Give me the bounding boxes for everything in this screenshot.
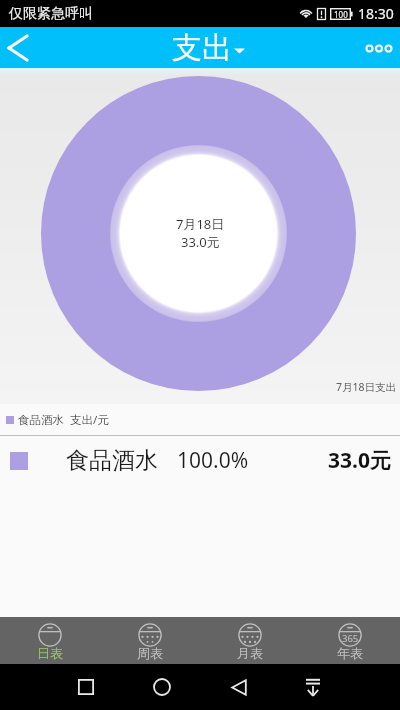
staticText: 周表 — [137, 645, 163, 661]
staticText: 食品酒水 支出/元 — [18, 412, 109, 428]
staticText: 日表 — [37, 645, 63, 661]
staticText: 100.0% — [177, 446, 249, 475]
button[interactable]: Home — [139, 664, 185, 710]
staticText: 33.0元 — [181, 233, 220, 251]
staticText: 7月18日 — [176, 215, 225, 233]
button[interactable]: 365 — [300, 617, 400, 664]
button[interactable]: 周表 — [100, 617, 200, 664]
staticText: 年表 — [337, 645, 363, 661]
button[interactable]: Back — [0, 27, 38, 68]
staticText: 支出 — [172, 29, 232, 67]
staticText: 7月18日支出 — [336, 380, 397, 394]
button[interactable]: More options — [356, 27, 400, 68]
button[interactable]: 月表 — [200, 617, 300, 664]
button[interactable]: 食品酒水 — [0, 436, 400, 485]
button[interactable]: 日表 — [0, 617, 100, 664]
staticText: 100 — [334, 9, 348, 20]
staticText: 365 — [342, 632, 359, 645]
staticText: 33.0元 — [328, 446, 391, 475]
staticText: 仅限紧急呼叫 — [9, 5, 93, 23]
staticText: 月表 — [237, 645, 263, 661]
staticText: 18:30 — [358, 4, 394, 23]
staticText: 食品酒水 — [66, 446, 158, 475]
button[interactable]: Back — [216, 664, 262, 710]
button[interactable]: 支出 — [145, 27, 255, 68]
button[interactable]: Recents — [63, 664, 109, 710]
button[interactable]: Hide navigation bar — [290, 664, 336, 710]
